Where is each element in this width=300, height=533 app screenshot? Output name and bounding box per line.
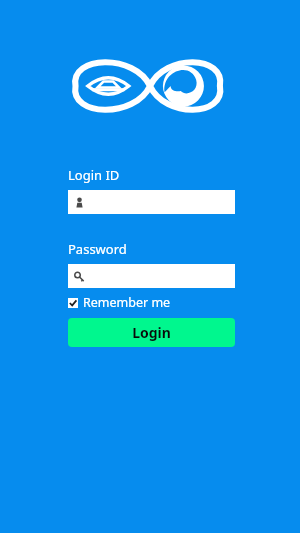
other: ALBA logo (74, 50, 226, 122)
staticText: Password (68, 240, 127, 258)
button[interactable]: Remember me (68, 294, 171, 311)
staticText: Login (132, 323, 171, 342)
button[interactable] (68, 190, 235, 214)
staticText: Login ID (68, 166, 120, 184)
button[interactable] (68, 264, 235, 288)
staticText: Remember me (83, 294, 171, 311)
button[interactable]: Login (68, 318, 235, 347)
